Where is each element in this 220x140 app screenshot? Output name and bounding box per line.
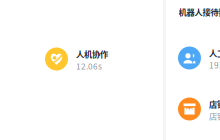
button[interactable]: 人机协作 — [45, 47, 157, 71]
staticText: 店铺接待 — [209, 98, 220, 110]
staticText: 12.06s — [76, 60, 102, 72]
button[interactable]: 店铺接待 — [178, 97, 220, 121]
staticText: 19次 — [209, 59, 220, 71]
staticText: 人机协作 — [76, 48, 108, 60]
staticText: 人工咨询 — [209, 47, 220, 59]
button[interactable]: 人工咨询 — [178, 46, 220, 70]
staticText: 店铺数 — [209, 110, 220, 122]
staticText: 机器人接待数据 — [178, 6, 220, 18]
